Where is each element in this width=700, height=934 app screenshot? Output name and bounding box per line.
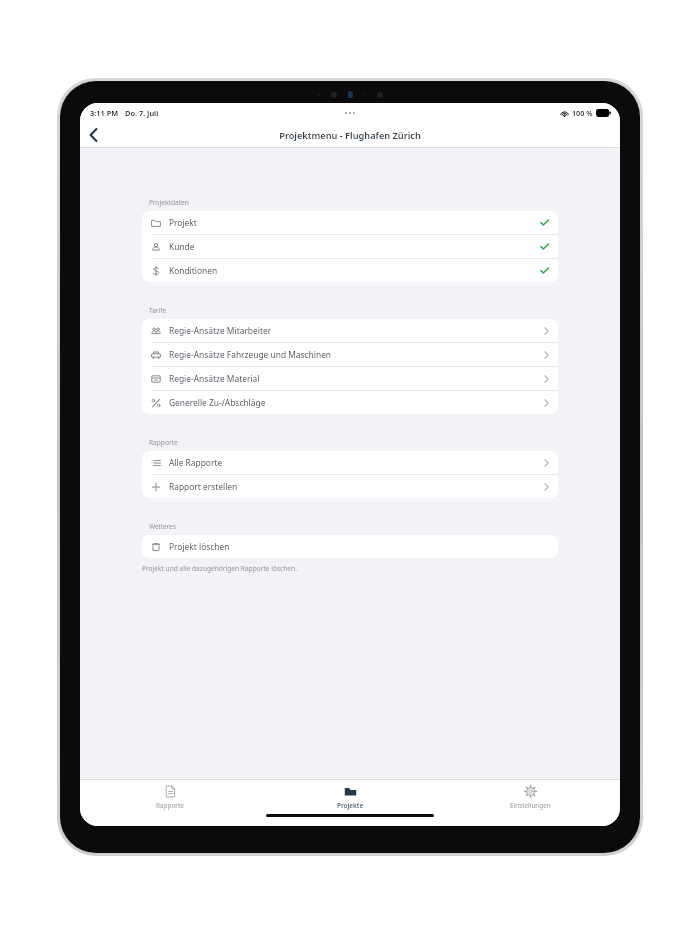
button[interactable]: Rapporte	[80, 780, 260, 814]
button[interactable]: Regie-Ansätze Mitarbeiter	[142, 319, 558, 342]
staticText: Weiteres	[149, 522, 176, 531]
staticText: Alle Rapporte	[169, 457, 223, 468]
staticText: Projektdaten	[149, 198, 189, 207]
staticText: Projekt und alle dazugehörigen Rapporte …	[142, 564, 297, 573]
button[interactable]: Projekt löschen	[142, 535, 558, 558]
button[interactable]: Regie-Ansätze Fahrzeuge und Maschinen	[142, 343, 558, 366]
staticText: Einstellungen	[510, 801, 551, 810]
button[interactable]: Generelle Zu-/Abschläge	[142, 391, 558, 414]
staticText: Tarife	[149, 306, 167, 315]
staticText: Regie-Ansätze Fahrzeuge und Maschinen	[169, 349, 332, 360]
button[interactable]: Alle Rapporte	[142, 451, 558, 474]
staticText: Projektmenu - Flughafen Zürich	[279, 129, 421, 142]
button[interactable]: Kunde	[142, 235, 558, 258]
staticText: Projekte	[337, 801, 364, 810]
staticText: Projekt löschen	[169, 541, 230, 552]
button[interactable]: Back	[80, 122, 106, 148]
staticText: 100 %	[572, 108, 593, 118]
staticText: Do. 7. Juli	[125, 108, 159, 118]
staticText: Rapporte	[156, 801, 184, 810]
staticText: 3:11 PM	[90, 108, 119, 118]
staticText: Rapporte	[149, 438, 178, 447]
button[interactable]: Projekte	[260, 780, 440, 814]
staticText: Kunde	[169, 241, 195, 252]
button[interactable]: Einstellungen	[440, 780, 620, 814]
button[interactable]: Rapport erstellen	[142, 475, 558, 498]
button[interactable]: Konditionen	[142, 259, 558, 282]
staticText: Regie-Ansätze Material	[169, 373, 260, 384]
staticText: Rapport erstellen	[169, 481, 238, 492]
staticText: Konditionen	[169, 265, 218, 276]
staticText: Generelle Zu-/Abschläge	[169, 397, 266, 408]
button[interactable]: Regie-Ansätze Material	[142, 367, 558, 390]
button[interactable]: Projekt	[142, 211, 558, 234]
staticText: Projekt	[169, 217, 197, 228]
staticText: Regie-Ansätze Mitarbeiter	[169, 325, 272, 336]
